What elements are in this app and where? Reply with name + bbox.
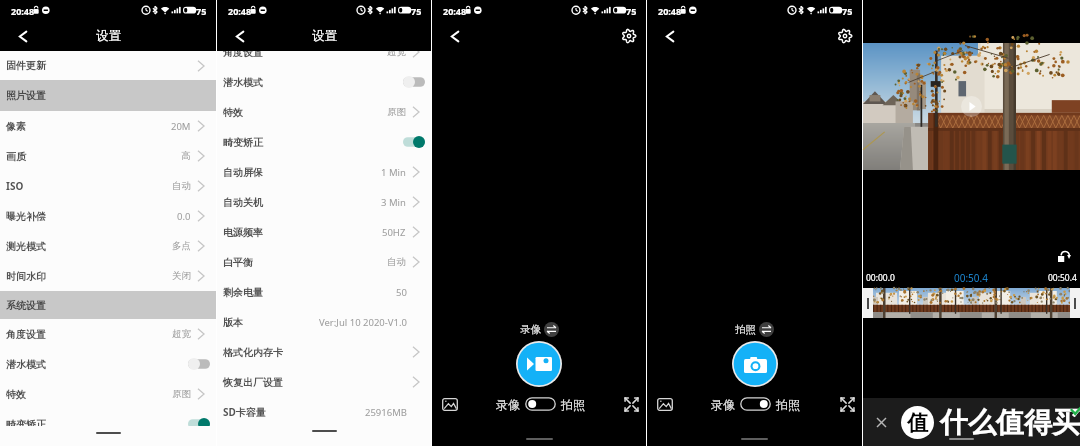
staticText: 格式化内存卡 [223, 346, 283, 359]
button[interactable]: Take photo [732, 341, 778, 387]
button[interactable]: Close [872, 413, 890, 431]
button[interactable]: 自动屏保 [217, 157, 431, 187]
button[interactable]: SD卡容量 [217, 397, 431, 427]
staticText: 拍照 [735, 323, 756, 336]
button[interactable]: 像素 [0, 111, 216, 141]
button[interactable]: 曝光补偿 [0, 201, 216, 231]
button[interactable]: 剩余电量 [217, 277, 431, 307]
staticText: 像素 [6, 120, 26, 133]
staticText: 自动关机 [223, 196, 263, 209]
button[interactable]: 固件更新 [0, 51, 216, 80]
staticText: 1 Min [381, 166, 406, 179]
staticText: 00:50.4 [1048, 272, 1077, 284]
staticText: 00:50.4 [954, 271, 988, 285]
button[interactable]: 畸变矫正 [217, 127, 431, 157]
button[interactable] [863, 288, 873, 318]
staticText: 20:48 [228, 5, 252, 17]
button[interactable]: Back [229, 21, 251, 51]
staticText: 角度设置 [6, 328, 46, 341]
staticText: 值 [907, 410, 928, 436]
staticText: 录像 [711, 397, 735, 412]
staticText: 原图 [387, 106, 406, 118]
staticText: 潜水模式 [223, 76, 263, 89]
staticText: 设置 [96, 28, 121, 44]
staticText: 角度设置 [223, 46, 263, 59]
staticText: 特效 [6, 388, 26, 401]
button[interactable] [740, 397, 771, 411]
staticText: 00:00.0 [866, 272, 895, 284]
button[interactable]: 自动关机 [217, 187, 431, 217]
button[interactable]: 恢复出厂设置 [217, 367, 431, 397]
staticText: 超宽 [172, 328, 191, 340]
staticText: 自动 [172, 180, 191, 192]
button[interactable]: 特效 [217, 97, 431, 127]
button[interactable]: Back [444, 21, 466, 51]
button[interactable]: Gallery [655, 394, 675, 414]
staticText: 测光模式 [6, 240, 46, 253]
button[interactable]: 测光模式 [0, 231, 216, 261]
button[interactable]: 画质 [0, 141, 216, 171]
staticText: 电源频率 [223, 226, 263, 239]
button[interactable]: Gallery [440, 394, 460, 414]
button[interactable]: Play [961, 96, 982, 117]
button[interactable]: 潜水模式 [0, 349, 216, 379]
button[interactable]: 白平衡 [217, 247, 431, 277]
button[interactable]: Fullscreen [621, 394, 641, 414]
staticText: 录像 [520, 323, 541, 336]
staticText: ISO [6, 179, 24, 193]
staticText: SD卡容量 [223, 405, 266, 419]
button[interactable]: Back [12, 21, 34, 51]
staticText: 什么值得买 [940, 405, 1080, 440]
staticText: 50HZ [382, 226, 406, 239]
staticText: 自动 [387, 256, 406, 268]
staticText: 特效 [223, 106, 243, 119]
button[interactable]: Settings [837, 21, 853, 51]
staticText: 剩余电量 [223, 286, 263, 299]
staticText: 原图 [172, 388, 191, 400]
staticText: 超宽 [387, 46, 406, 58]
button[interactable]: 特效 [0, 379, 216, 409]
staticText: 高 [181, 150, 191, 162]
button[interactable]: 角度设置 [217, 37, 431, 67]
staticText: 拍照 [776, 397, 800, 412]
staticText: 恢复出厂设置 [223, 376, 283, 389]
button[interactable]: 时间水印 [0, 261, 216, 291]
button[interactable]: Back [659, 21, 681, 51]
staticText: 录像 [496, 397, 520, 412]
button[interactable]: 电源频率 [217, 217, 431, 247]
staticText: 拍照 [561, 397, 585, 412]
button[interactable]: 潜水模式 [217, 67, 431, 97]
staticText: 白平衡 [223, 256, 253, 269]
button[interactable]: Settings [621, 21, 637, 51]
staticText: 畸变矫正 [223, 136, 263, 149]
button[interactable]: 拍照 [735, 321, 774, 338]
staticText: 自动屏保 [223, 166, 263, 179]
staticText: 潜水模式 [6, 358, 46, 371]
button[interactable]: Rotate [1056, 248, 1072, 264]
button[interactable]: Record [516, 341, 562, 387]
staticText: 版本 [223, 316, 243, 329]
staticText: 50 [396, 286, 407, 299]
button[interactable]: 角度设置 [0, 319, 216, 349]
staticText: 0.0 [177, 210, 191, 223]
staticText: 75 [196, 5, 207, 17]
button[interactable]: 畸变矫正 [0, 409, 216, 439]
staticText: 多点 [172, 240, 191, 252]
button[interactable]: 录像 [520, 321, 559, 338]
button[interactable]: ISO [0, 171, 216, 201]
staticText: 75 [411, 5, 422, 17]
button[interactable]: 格式化内存卡 [217, 337, 431, 367]
staticText: 20:48 [658, 5, 682, 17]
staticText: 时间水印 [6, 270, 46, 283]
staticText: 20:48 [11, 5, 35, 17]
staticText: 75 [842, 5, 853, 17]
button[interactable] [1070, 288, 1080, 318]
button[interactable] [525, 397, 556, 411]
staticText: 画质 [6, 150, 26, 163]
button[interactable]: 版本 [217, 307, 431, 337]
button[interactable]: Fullscreen [837, 394, 857, 414]
staticText: 25916MB [365, 406, 407, 419]
staticText: 固件更新 [6, 59, 46, 72]
staticText: Ver:Jul 10 2020-V1.0 [319, 316, 407, 329]
staticText: 关闭 [172, 270, 191, 282]
